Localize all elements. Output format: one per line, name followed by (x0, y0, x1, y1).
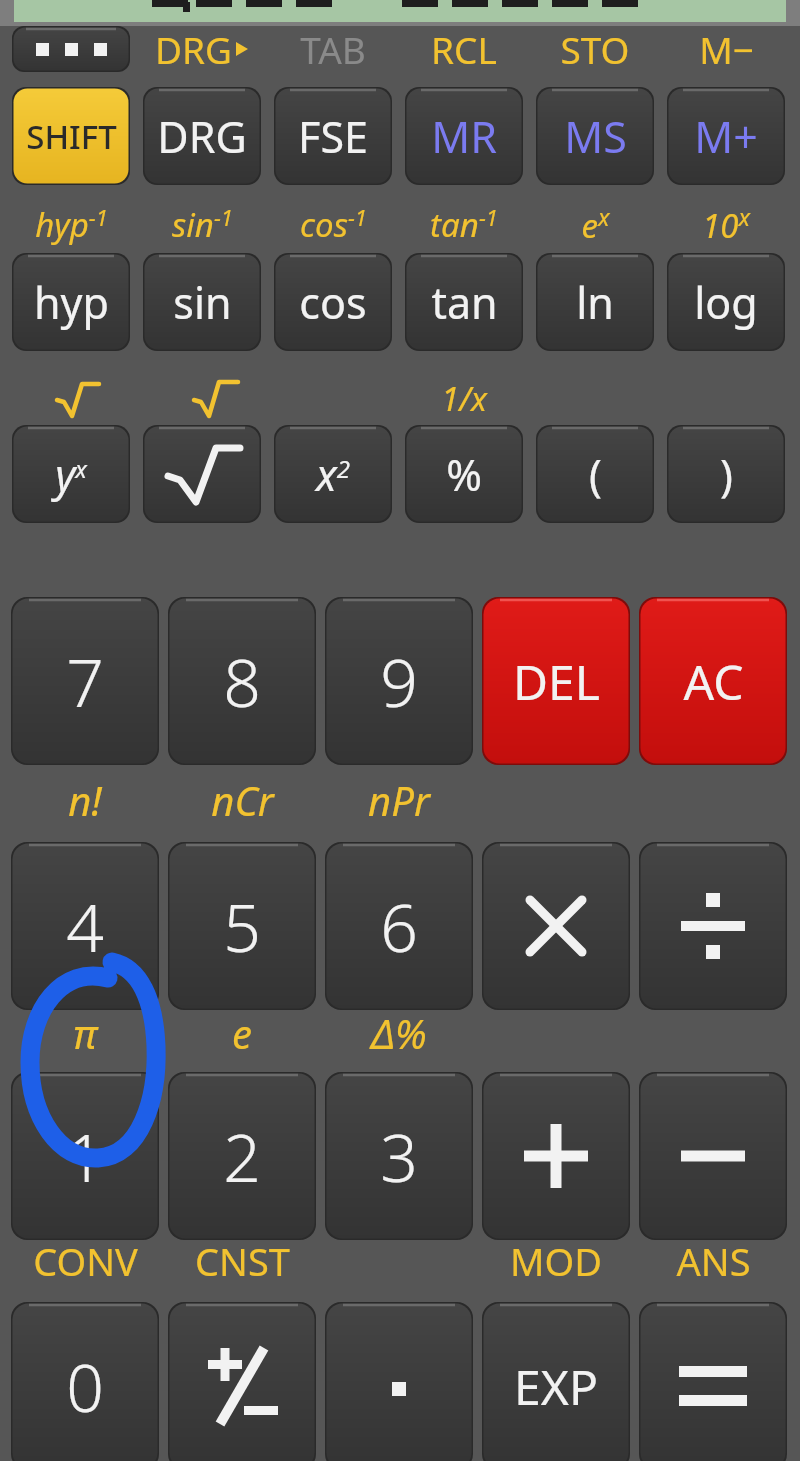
button[interactable]: Shift (12, 87, 130, 185)
button[interactable]: Memory add (667, 87, 785, 185)
button[interactable]: 2 (168, 1072, 316, 1240)
staticText: ANS (676, 1235, 751, 1287)
staticText: MS (564, 107, 627, 166)
staticText: 3 (380, 1111, 418, 1201)
button[interactable]: minus (639, 1072, 787, 1240)
staticText: nPr (368, 773, 430, 827)
button[interactable]: y to the x (12, 425, 130, 523)
staticText: CNST (195, 1235, 290, 1287)
button[interactable]: 4 (11, 842, 159, 1010)
staticText: 8 (223, 636, 261, 726)
button[interactable]: x squared (274, 425, 392, 523)
staticText: log (694, 273, 758, 332)
button[interactable]: 3 (325, 1072, 473, 1240)
staticText: 6 (380, 881, 418, 971)
staticText: M+ (694, 107, 758, 166)
button[interactable]: 9 (325, 597, 473, 765)
staticText: ) (720, 445, 733, 504)
button[interactable]: log base 10 (667, 253, 785, 351)
button[interactable]: square root (143, 425, 261, 523)
button[interactable]: DRG (143, 87, 261, 185)
button[interactable]: cosine (274, 253, 392, 351)
button[interactable]: equals (639, 1302, 787, 1461)
button[interactable]: close parenthesis (667, 425, 785, 523)
staticText: FSE (298, 107, 368, 166)
staticText: 10x (702, 200, 750, 248)
button[interactable]: plus (482, 1072, 630, 1240)
staticText: % (446, 445, 482, 504)
staticText: cos-1 (300, 202, 367, 247)
staticText: 4 (66, 881, 104, 971)
staticText: x2 (316, 445, 350, 504)
staticText: tan (431, 273, 498, 332)
button[interactable]: 7 (11, 597, 159, 765)
staticText: π (73, 1006, 97, 1060)
button[interactable]: More options (12, 26, 130, 72)
staticText: 0 (66, 1341, 104, 1431)
staticText: MOD (510, 1235, 602, 1287)
staticText: ln (576, 273, 614, 332)
button[interactable]: hyperbolic (12, 253, 130, 351)
button[interactable]: Memory store (536, 87, 654, 185)
staticText: Δ% (371, 1006, 427, 1060)
staticText: 7 (66, 636, 104, 726)
staticText: 1/x (441, 376, 487, 421)
button[interactable]: DEL (482, 597, 630, 765)
button[interactable]: multiply (482, 842, 630, 1010)
staticText: STO (560, 24, 630, 74)
staticText: MR (431, 107, 497, 166)
button[interactable]: decimal point (325, 1302, 473, 1461)
staticText: 5 (223, 881, 261, 971)
button[interactable]: FSE (274, 87, 392, 185)
button[interactable]: 5 (168, 842, 316, 1010)
staticText: DRG (155, 24, 232, 74)
staticText: RCL (431, 24, 497, 74)
staticText: DRG (157, 107, 247, 166)
button[interactable]: 1 (11, 1072, 159, 1240)
button[interactable]: divide (639, 842, 787, 1010)
staticText: SHIFT (26, 114, 117, 159)
button[interactable]: 0 (11, 1302, 159, 1461)
staticText: ( (589, 445, 602, 504)
button[interactable]: EXP (482, 1302, 630, 1461)
staticText: yx (55, 445, 87, 504)
staticText: cos (299, 273, 367, 332)
button[interactable]: Memory recall (405, 87, 523, 185)
staticText: ex (581, 200, 610, 248)
button[interactable]: sine (143, 253, 261, 351)
staticText: M− (699, 24, 754, 74)
staticText: sin (173, 273, 232, 332)
button[interactable]: 6 (325, 842, 473, 1010)
button[interactable]: natural log (536, 253, 654, 351)
staticText: hyp-1 (35, 202, 108, 247)
staticText: TAB (300, 24, 366, 74)
staticText: n! (68, 773, 102, 827)
staticText: 9 (380, 636, 418, 726)
button[interactable]: percent (405, 425, 523, 523)
staticText: 2 (223, 1111, 261, 1201)
staticText: 1 (66, 1111, 104, 1201)
button[interactable]: tangent (405, 253, 523, 351)
staticText: sin-1 (172, 202, 233, 247)
button[interactable]: AC (639, 597, 787, 765)
staticText: CONV (33, 1235, 138, 1287)
button[interactable]: plus minus (168, 1302, 316, 1461)
staticText: DEL (513, 649, 600, 714)
staticText: nCr (211, 773, 274, 827)
staticText: hyp (34, 273, 109, 332)
staticText: e (232, 1006, 252, 1060)
staticText: EXP (514, 1354, 598, 1419)
button[interactable]: open parenthesis (536, 425, 654, 523)
staticText: tan-1 (430, 202, 498, 247)
staticText: AC (683, 649, 744, 714)
button[interactable]: 8 (168, 597, 316, 765)
